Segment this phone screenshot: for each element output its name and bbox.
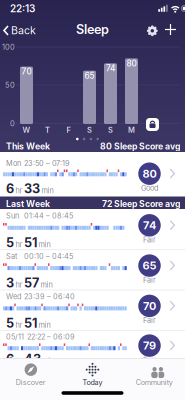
staticText: Back — [11, 24, 36, 37]
staticText: Today — [82, 378, 102, 387]
button[interactable]: Mon — [0, 152, 185, 196]
staticText: Discover — [16, 378, 46, 387]
staticText: hr — [15, 186, 22, 195]
staticText: 0 — [10, 119, 15, 128]
staticText: 74 — [106, 63, 115, 73]
button[interactable]: Wed — [0, 290, 185, 330]
staticText: hr — [15, 321, 22, 330]
staticText: 57 — [24, 275, 39, 291]
staticText: 80 Sleep Score avg — [100, 141, 180, 151]
staticText: 6 — [6, 351, 14, 367]
staticText: Mon — [6, 159, 21, 168]
staticText: 23:50 – 07:19 — [24, 159, 70, 168]
staticText: 33 — [24, 181, 40, 196]
staticText: Wed — [6, 292, 21, 301]
staticText: 80 — [126, 58, 136, 68]
staticText: 01:44 – 08:45 — [24, 211, 73, 220]
staticText: min — [42, 357, 54, 365]
staticText: 51 — [24, 235, 37, 250]
staticText: Fair — [143, 235, 156, 244]
staticText: hr — [15, 357, 22, 365]
staticText: Sat — [6, 252, 17, 261]
staticText: Sun — [6, 211, 19, 220]
staticText: 3 — [6, 275, 14, 291]
staticText: Community — [136, 378, 173, 387]
button[interactable]: 05/11 — [0, 330, 185, 370]
staticText: S — [87, 125, 92, 134]
staticText: Sleep — [76, 22, 109, 37]
button[interactable]: Back — [3, 24, 36, 37]
staticText: hr — [15, 280, 22, 289]
staticText: T — [45, 125, 50, 134]
staticText: 74 — [143, 219, 156, 232]
staticText: 51 — [24, 316, 37, 331]
button[interactable] — [145, 24, 156, 35]
staticText: M — [128, 125, 135, 134]
staticText: F — [66, 125, 70, 134]
staticText: 72 Sleep Score avg — [102, 198, 180, 209]
staticText: 5 — [6, 235, 14, 250]
staticText: 00:10 – 04:45 — [24, 252, 73, 261]
staticText: 5 — [6, 316, 14, 331]
staticText: min — [38, 240, 50, 249]
staticText: 70 — [143, 299, 156, 312]
staticText: Fair — [143, 356, 156, 365]
staticText: Fair — [143, 276, 156, 285]
staticText: hr — [15, 240, 22, 249]
staticText: Fair — [143, 316, 156, 325]
staticText: 80 — [142, 167, 156, 180]
button[interactable]: Community — [123, 362, 185, 388]
staticText: min — [41, 186, 53, 195]
staticText: 22:22 – 06:09 — [27, 332, 75, 341]
staticText: 43 — [24, 351, 41, 367]
staticText: 70 — [21, 67, 31, 77]
staticText: S — [108, 125, 113, 134]
staticText: Good — [141, 184, 158, 193]
button[interactable]: Sun — [0, 209, 185, 249]
staticText: Last Week — [6, 198, 50, 209]
button[interactable]: Discover — [0, 362, 62, 388]
staticText: 79 — [143, 339, 156, 352]
staticText: 23:39 – 06:40 — [24, 292, 75, 301]
staticText: This Week — [6, 141, 50, 151]
staticText: W — [22, 125, 30, 134]
staticText: 22:13 — [10, 2, 35, 15]
staticText: 05/11 — [6, 332, 24, 341]
button[interactable] — [165, 24, 176, 35]
staticText: 100 — [2, 42, 15, 51]
button[interactable]: Today — [62, 362, 123, 388]
staticText: 6 — [6, 181, 14, 196]
staticText: 65 — [84, 71, 94, 81]
staticText: 65 — [142, 259, 156, 272]
staticText: min — [40, 280, 52, 289]
button[interactable]: Sat — [0, 249, 185, 290]
staticText: min — [38, 321, 50, 330]
staticText: 50 — [5, 80, 15, 89]
